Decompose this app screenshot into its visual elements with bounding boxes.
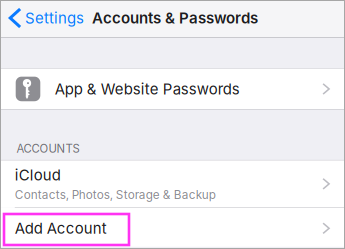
button[interactable]: Settings xyxy=(1,0,92,36)
staticText: ACCOUNTS xyxy=(16,142,79,155)
staticText: Contacts, Photos, Storage & Backup xyxy=(15,187,216,202)
staticText: iCloud xyxy=(15,166,61,184)
staticText: Settings xyxy=(25,9,84,27)
button[interactable]: App & Website Passwords xyxy=(1,69,344,109)
button[interactable]: iCloud xyxy=(1,161,344,207)
button[interactable]: Add Account xyxy=(1,208,344,247)
staticText: Add Account xyxy=(15,219,107,237)
staticText: Accounts & Passwords xyxy=(92,9,258,27)
staticText: App & Website Passwords xyxy=(55,80,240,98)
